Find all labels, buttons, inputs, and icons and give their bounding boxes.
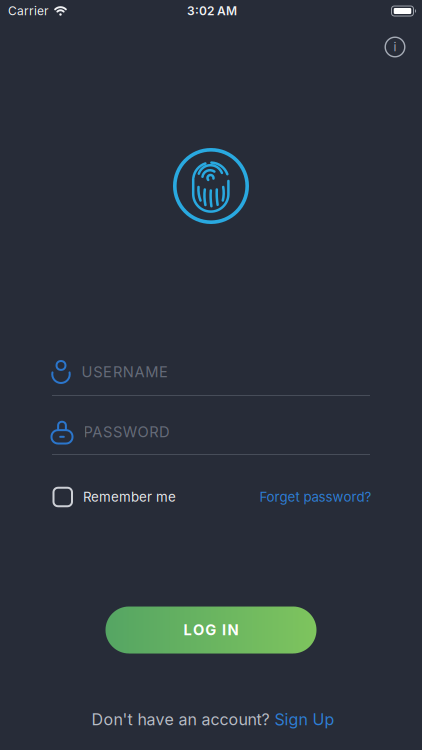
button[interactable]: L: [105, 606, 316, 653]
staticText: USERNAME: [81, 363, 168, 381]
staticText: I: [222, 621, 226, 639]
staticText: 3:02 AM: [187, 4, 237, 18]
button[interactable]: Sign Up: [274, 710, 334, 729]
staticText: Forget password?: [259, 489, 371, 505]
staticText: Remember me: [83, 489, 176, 505]
button[interactable]: Forget password?: [259, 489, 371, 505]
button[interactable]: Remember me: [52, 487, 176, 507]
staticText: Sign Up: [274, 710, 334, 729]
staticText: PASSWORD: [83, 423, 170, 441]
staticText: G: [205, 621, 216, 639]
staticText: i: [393, 40, 396, 54]
staticText: Carrier: [8, 4, 49, 18]
staticText: O: [193, 621, 204, 639]
staticText: L: [183, 621, 191, 639]
staticText: N: [227, 621, 238, 639]
staticText: Don't have an account?: [91, 710, 274, 729]
button[interactable]: Info: [380, 32, 410, 62]
